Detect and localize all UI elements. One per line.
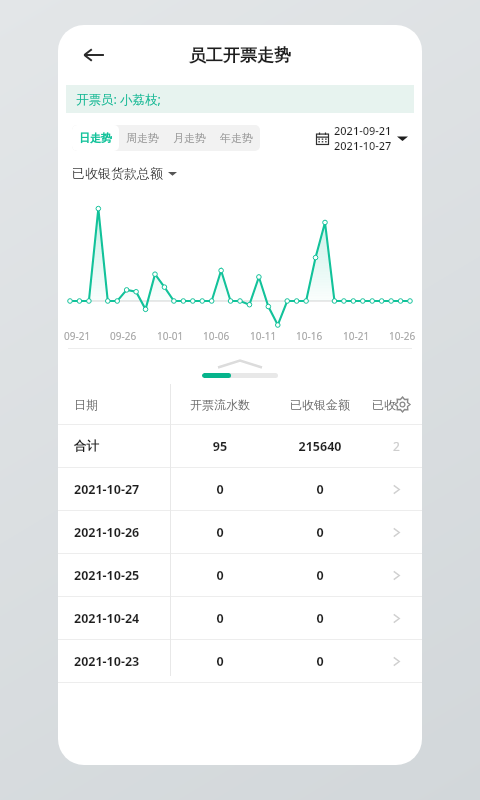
staticText: 合计 [74, 438, 170, 454]
staticText: 2021-09-21 [334, 123, 392, 138]
staticText: 日期 [74, 397, 170, 412]
staticText: 10-21 [343, 329, 370, 343]
staticText: 2021-10-27 [74, 481, 170, 498]
staticText: 月走势 [173, 131, 206, 145]
button[interactable]: 2021-10-27 [58, 468, 422, 510]
staticText: 0 [170, 567, 270, 584]
button[interactable]: 2021-10-23 [58, 640, 422, 682]
staticText: 10-11 [250, 329, 277, 343]
staticText: 10-06 [203, 329, 230, 343]
button[interactable]: Back [74, 35, 114, 75]
staticText: 已收银货款总额 [72, 165, 163, 181]
staticText: 2 [393, 438, 400, 454]
staticText: 0 [270, 524, 370, 541]
button[interactable]: 周走势 [119, 125, 166, 151]
staticText: 0 [170, 481, 270, 498]
staticText: 2021-10-25 [74, 567, 170, 584]
staticText: 0 [270, 481, 370, 498]
staticText: 0 [270, 610, 370, 627]
button[interactable]: Settings [392, 394, 412, 414]
staticText: 0 [170, 610, 270, 627]
staticText: 2021-10-27 [334, 138, 392, 153]
staticText: 95 [170, 438, 270, 455]
button[interactable]: 年走势 [213, 125, 260, 151]
staticText: 10-16 [296, 329, 323, 343]
button[interactable]: 月走势 [166, 125, 213, 151]
staticText: 0 [270, 567, 370, 584]
staticText: 开票员: 小荔枝; [76, 91, 161, 108]
button[interactable]: 合计 [58, 425, 422, 467]
staticText: 0 [270, 653, 370, 670]
staticText: 周走势 [126, 131, 159, 145]
staticText: 2021-10-23 [74, 653, 170, 670]
staticText: 09-26 [110, 329, 137, 343]
staticText: 2021-10-24 [74, 610, 170, 627]
button[interactable]: 2021-09-21 [316, 123, 408, 153]
staticText: 已收银金额 [270, 397, 370, 412]
staticText: 0 [170, 653, 270, 670]
staticText: 2021-10-26 [74, 524, 170, 541]
staticText: 员工开票走势 [189, 45, 291, 66]
staticText: 开票流水数 [170, 397, 270, 412]
staticText: 已收 [372, 397, 396, 412]
button[interactable]: 2021-10-25 [58, 554, 422, 596]
staticText: 09-21 [64, 329, 91, 343]
staticText: 215640 [270, 438, 370, 455]
button[interactable]: 日走势 [72, 125, 119, 151]
staticText: 0 [170, 524, 270, 541]
button[interactable]: 已收银货款总额 [72, 165, 177, 181]
button[interactable]: 2021-10-24 [58, 597, 422, 639]
staticText: 10-01 [157, 329, 184, 343]
staticText: 10-26 [389, 329, 416, 343]
staticText: 日走势 [79, 131, 112, 145]
button[interactable]: 2021-10-26 [58, 511, 422, 553]
staticText: 年走势 [220, 131, 253, 145]
